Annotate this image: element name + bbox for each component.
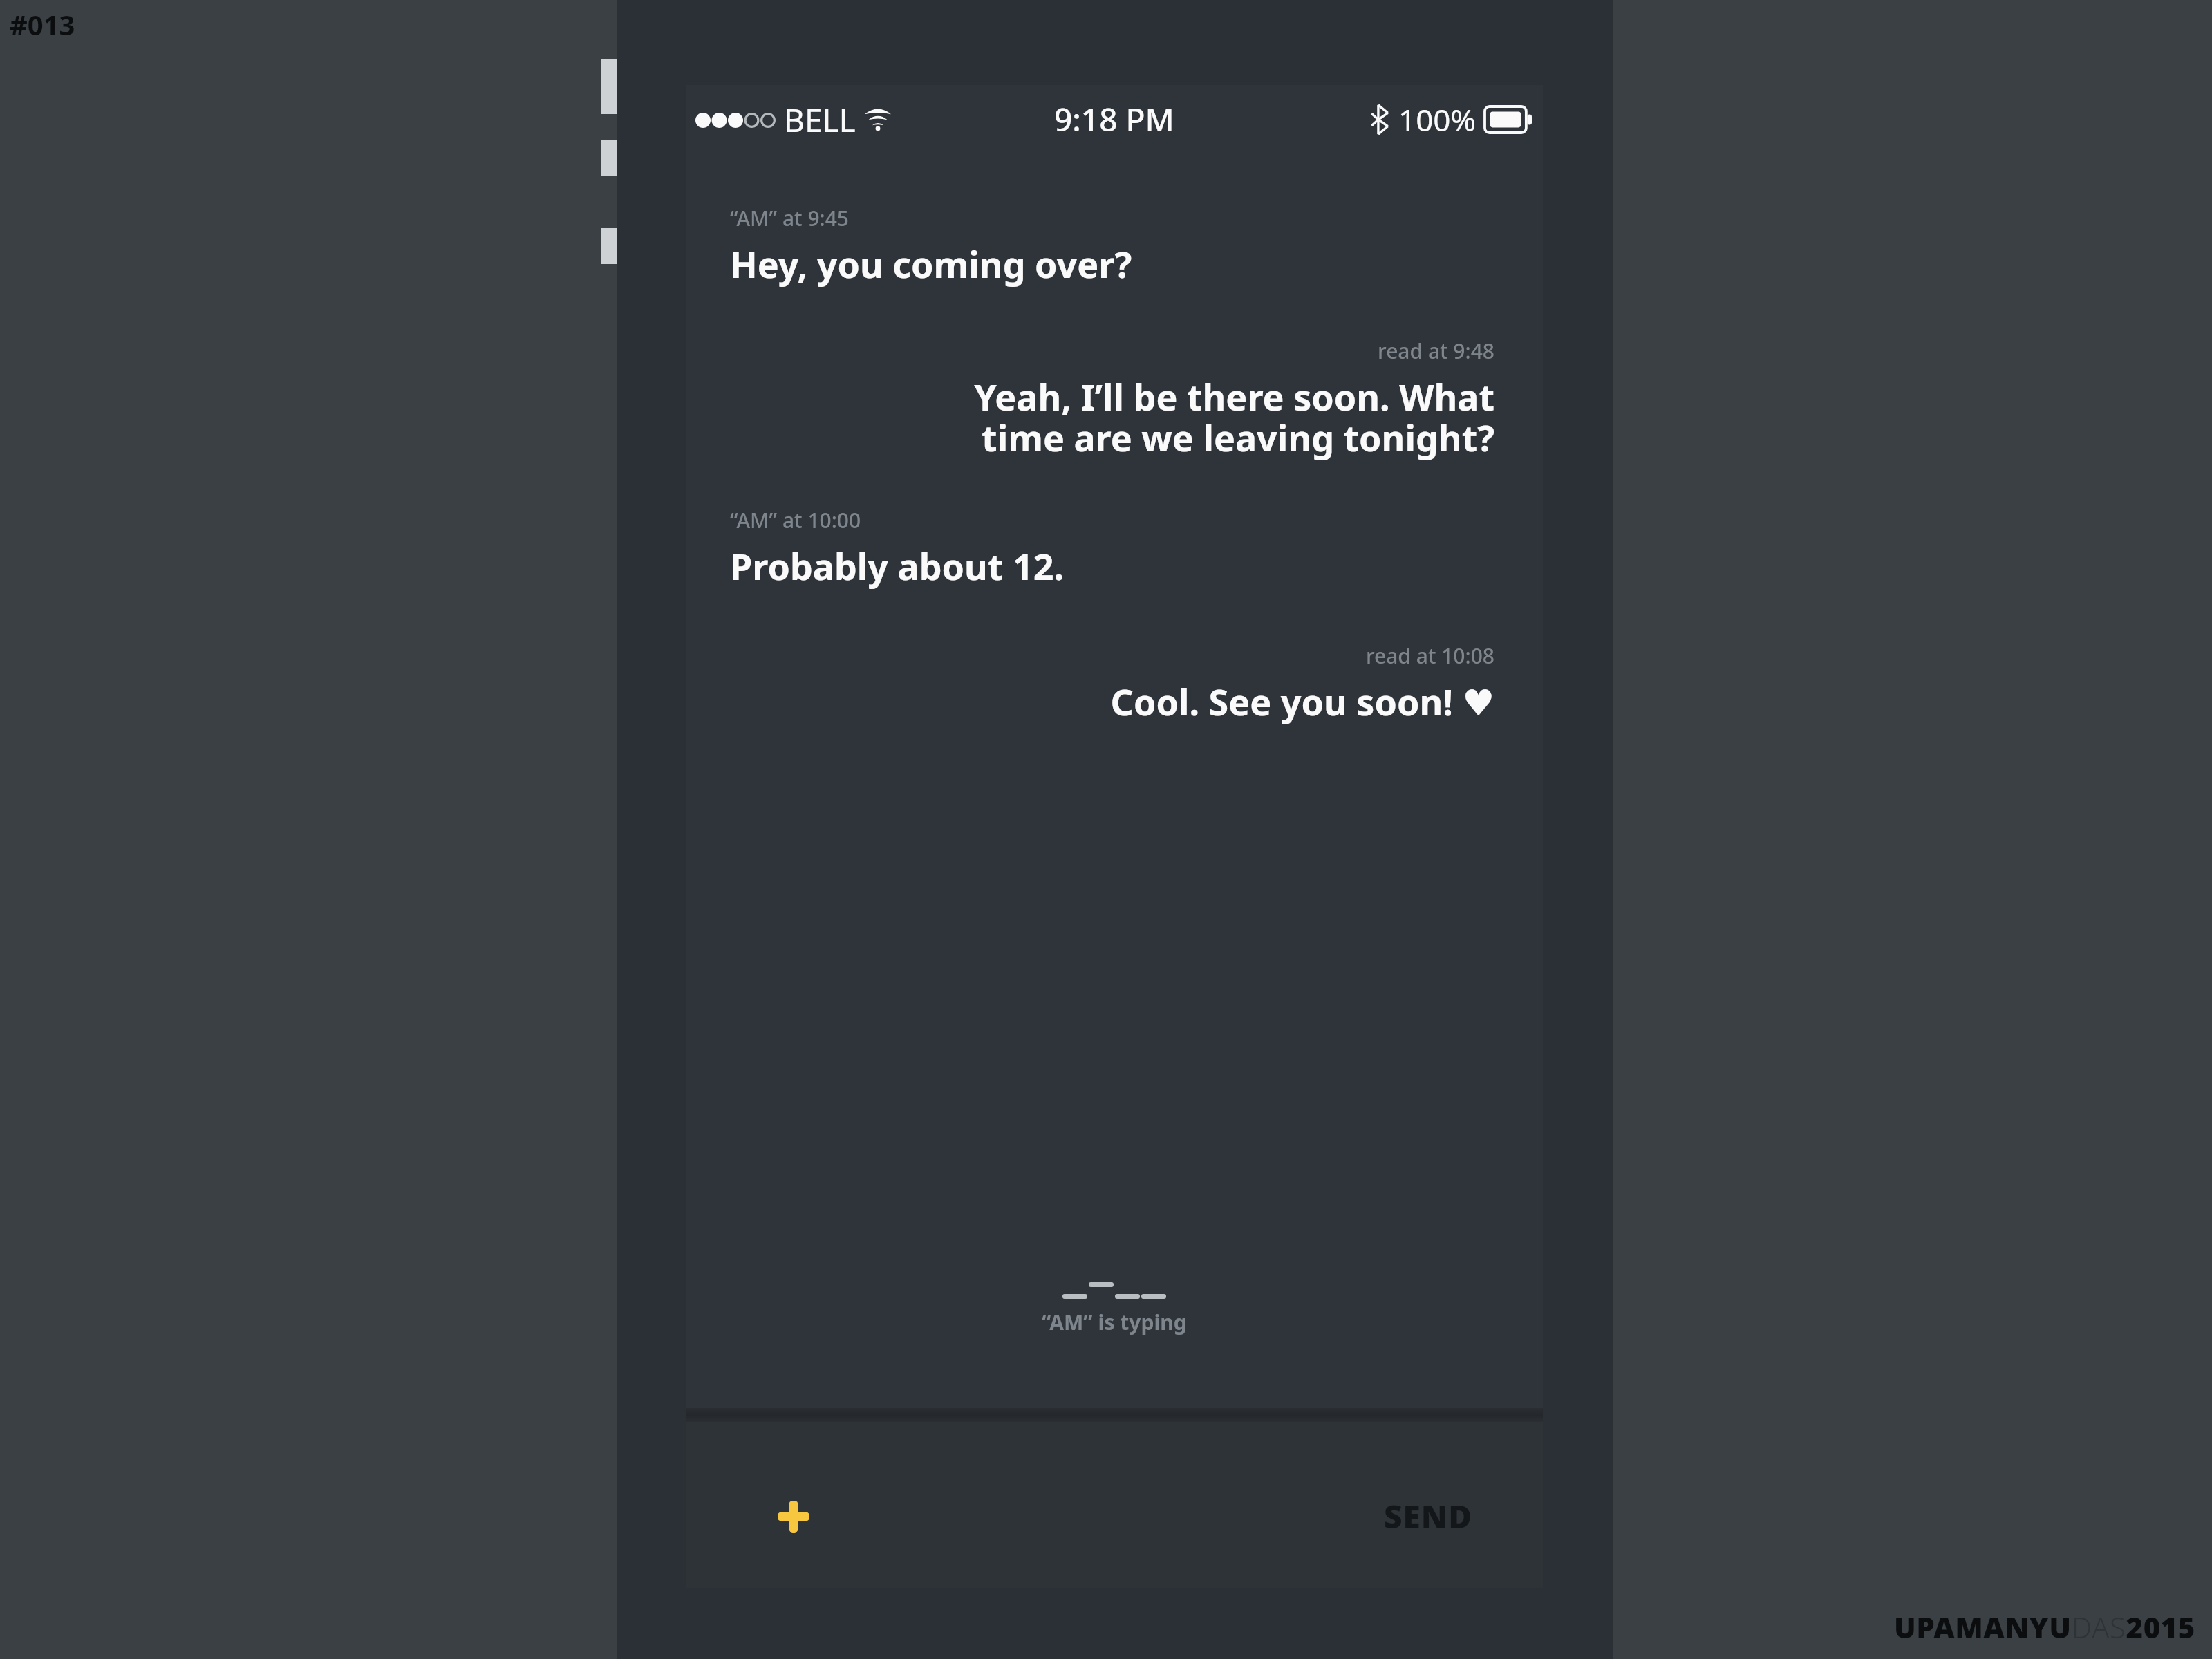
- staticText: 100%: [1398, 99, 1477, 140]
- staticText: Yeah, I’ll be there soon. What time are …: [974, 372, 1494, 462]
- button[interactable]: read at 10:08: [686, 641, 1543, 726]
- staticText: read at 9:48: [1378, 337, 1494, 365]
- button[interactable]: Hardware button: [601, 140, 617, 176]
- button[interactable]: “AM” at 9:45: [686, 204, 1543, 288]
- staticText: “AM” at 10:00: [730, 506, 861, 534]
- staticText: #013: [10, 6, 75, 43]
- staticText: UPAMANYUDAS2015: [1894, 1607, 2195, 1647]
- button[interactable]: Hardware button: [601, 228, 617, 264]
- button[interactable]: “AM” at 10:00: [686, 506, 1543, 590]
- button[interactable]: read at 9:48: [686, 337, 1543, 462]
- staticText: SEND: [1384, 1494, 1472, 1538]
- staticText: “AM” at 9:45: [730, 204, 850, 232]
- staticText: Hey, you coming over?: [730, 239, 1132, 288]
- button[interactable]: Add attachment: [760, 1483, 827, 1550]
- staticText: Probably about 12.: [730, 541, 1065, 590]
- staticText: read at 10:08: [1365, 641, 1494, 670]
- staticText: 9:18 PM: [1054, 97, 1174, 141]
- button[interactable]: SEND: [1371, 1483, 1485, 1549]
- staticText: “AM” is typing: [1042, 1308, 1187, 1336]
- staticText: Cool. See you soon! ♥: [1110, 677, 1494, 726]
- staticText: BELL: [784, 98, 856, 142]
